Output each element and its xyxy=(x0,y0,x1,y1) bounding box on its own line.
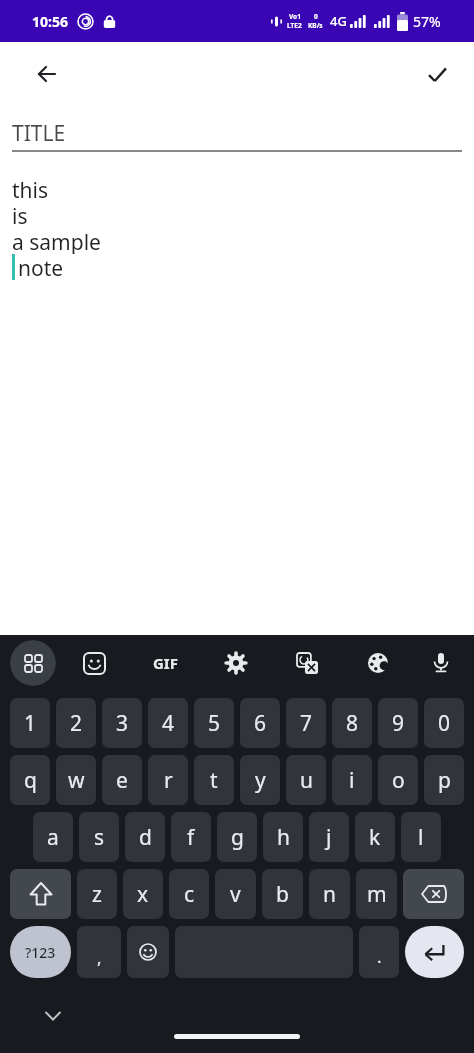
staticText: LTE2 xyxy=(287,21,302,30)
staticText: 1 xyxy=(24,709,37,738)
button[interactable]: u xyxy=(286,755,326,805)
button[interactable] xyxy=(127,926,169,978)
button[interactable]: n xyxy=(309,869,350,919)
button[interactable] xyxy=(418,640,464,686)
button[interactable]: 3 xyxy=(102,698,142,748)
button[interactable] xyxy=(405,926,464,978)
staticText: this xyxy=(12,176,49,202)
staticText: 0 xyxy=(438,709,451,738)
staticText: . xyxy=(377,945,382,968)
staticText: 0 xyxy=(314,12,318,21)
staticText: f xyxy=(187,823,195,852)
button[interactable]: x xyxy=(123,869,163,919)
button[interactable]: g xyxy=(217,812,257,862)
staticText: c xyxy=(184,880,195,909)
staticText: TITLE xyxy=(12,119,66,148)
button[interactable]: l xyxy=(401,812,441,862)
staticText: a sample xyxy=(12,228,101,254)
button[interactable]: v xyxy=(215,869,256,919)
staticText: k xyxy=(369,823,381,852)
staticText: 7 xyxy=(300,709,313,738)
button[interactable] xyxy=(174,1034,300,1039)
staticText: 10:56 xyxy=(32,12,68,31)
button[interactable] xyxy=(414,51,460,97)
button[interactable]: 6 xyxy=(240,698,280,748)
staticText: v xyxy=(230,880,241,909)
staticText: 6 xyxy=(254,709,267,738)
staticText: GIF xyxy=(153,653,178,673)
button[interactable]: q xyxy=(10,755,50,805)
button[interactable]: r xyxy=(148,755,188,805)
staticText: , xyxy=(97,946,102,969)
button[interactable]: y xyxy=(240,755,280,805)
button[interactable]: 7 xyxy=(286,698,326,748)
button[interactable]: 1 xyxy=(10,698,50,748)
staticText: 57% xyxy=(413,12,441,31)
button[interactable]: GIF xyxy=(142,640,188,686)
button[interactable] xyxy=(10,869,71,919)
staticText: s xyxy=(94,823,105,852)
button[interactable]: s xyxy=(79,812,119,862)
button[interactable]: f xyxy=(171,812,211,862)
button[interactable]: TITLE xyxy=(12,119,462,148)
staticText: 3 xyxy=(116,709,129,738)
staticText: y xyxy=(255,766,266,795)
staticText: 8 xyxy=(346,709,359,738)
staticText: 5 xyxy=(208,709,221,738)
button[interactable]: z xyxy=(77,869,117,919)
button[interactable]: ?123 xyxy=(10,926,71,978)
button[interactable]: 9 xyxy=(378,698,418,748)
button[interactable] xyxy=(284,640,330,686)
button[interactable]: , xyxy=(77,926,121,978)
button[interactable]: p xyxy=(424,755,464,805)
staticText: b xyxy=(276,880,289,909)
button[interactable]: i xyxy=(332,755,372,805)
button[interactable] xyxy=(10,640,56,686)
button[interactable]: b xyxy=(262,869,303,919)
staticText: z xyxy=(92,880,102,909)
staticText: 4 xyxy=(162,709,175,738)
staticText: r xyxy=(164,766,173,795)
button[interactable] xyxy=(71,640,117,686)
staticText: a xyxy=(47,823,59,852)
button[interactable]: d xyxy=(125,812,165,862)
button[interactable] xyxy=(24,51,70,97)
button[interactable]: h xyxy=(263,812,303,862)
staticText: is xyxy=(12,202,28,228)
button[interactable]: m xyxy=(356,869,397,919)
staticText: ?123 xyxy=(25,943,56,962)
button[interactable]: j xyxy=(309,812,349,862)
staticText: x xyxy=(137,880,149,909)
staticText: 9 xyxy=(392,709,405,738)
staticText: 4G xyxy=(330,12,347,30)
button[interactable] xyxy=(36,999,70,1033)
button[interactable]: w xyxy=(56,755,96,805)
button[interactable]: 2 xyxy=(56,698,96,748)
staticText: q xyxy=(24,766,37,795)
staticText: 2 xyxy=(70,709,83,738)
button[interactable]: 0 xyxy=(424,698,464,748)
button[interactable]: 4 xyxy=(148,698,188,748)
button[interactable]: . xyxy=(359,926,399,978)
staticText: e xyxy=(116,766,128,795)
staticText: j xyxy=(326,823,332,852)
button[interactable] xyxy=(403,869,464,919)
button[interactable]: 5 xyxy=(194,698,234,748)
staticText: w xyxy=(68,766,85,795)
staticText: o xyxy=(392,766,405,795)
button[interactable]: a xyxy=(33,812,73,862)
staticText: i xyxy=(349,766,355,795)
button[interactable]: e xyxy=(102,755,142,805)
button[interactable]: this xyxy=(12,176,462,280)
button[interactable]: 8 xyxy=(332,698,372,748)
button[interactable]: c xyxy=(169,869,209,919)
button[interactable] xyxy=(355,640,401,686)
button[interactable]: t xyxy=(194,755,234,805)
staticText: KB/s xyxy=(308,21,323,30)
button[interactable]: k xyxy=(355,812,395,862)
staticText: l xyxy=(418,823,424,852)
staticText: t xyxy=(210,766,218,795)
button[interactable]: o xyxy=(378,755,418,805)
button[interactable] xyxy=(213,640,259,686)
